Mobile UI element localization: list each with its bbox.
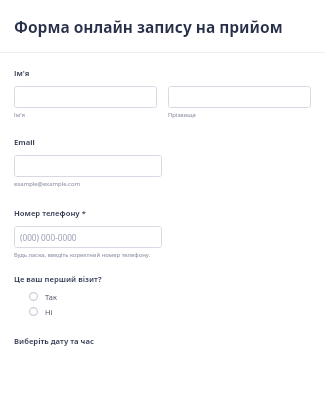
staticText: Номер телефону * [14,208,86,218]
staticText: Ім'я [14,111,25,119]
staticText: Прізвище [168,111,196,119]
staticText: Так [45,292,57,302]
staticText: Виберіть дату та час [14,336,94,346]
button[interactable] [168,86,311,108]
staticText: Форма онлайн запису на прийом [14,16,283,37]
button[interactable]: Ні [14,304,311,319]
button[interactable] [14,155,162,177]
staticText: Будь ласка, введіть коректний номер теле… [14,251,151,259]
staticText: Email [14,137,35,147]
staticText: (000) 000-0000 [20,232,77,243]
staticText: Ім'я [14,68,30,78]
button[interactable]: (000) 000-0000 [14,226,162,248]
staticText: Ні [45,307,53,317]
button[interactable]: Так [14,289,311,304]
button[interactable] [14,86,157,108]
staticText: Це ваш перший візит? [14,274,102,284]
staticText: example@example.com [14,180,80,188]
